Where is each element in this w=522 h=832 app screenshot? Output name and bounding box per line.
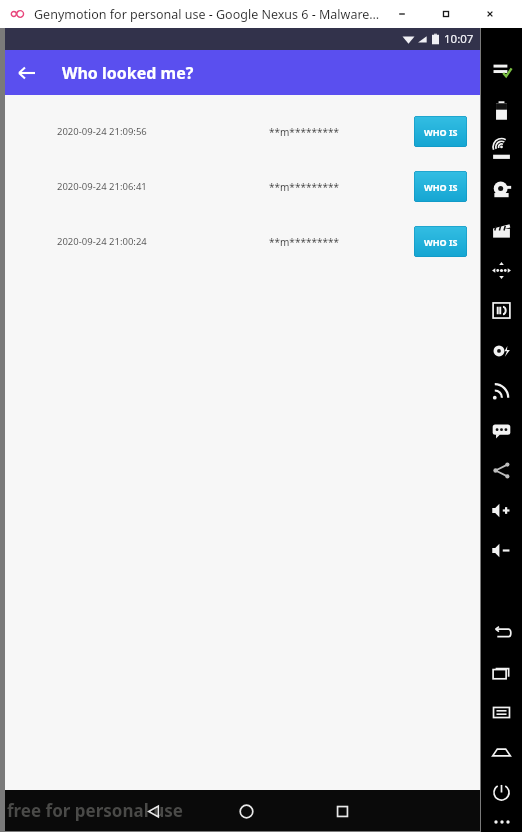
button[interactable]: Network xyxy=(481,370,522,410)
button[interactable]: 2020-09-24 21:09:56 xyxy=(5,104,480,159)
button[interactable]: Screen record xyxy=(481,210,522,250)
button[interactable]: Minimize xyxy=(380,0,424,28)
button[interactable]: Maximize xyxy=(424,0,468,28)
button[interactable]: WHO IS xyxy=(414,171,467,202)
button[interactable]: Camera xyxy=(481,170,522,210)
button[interactable]: SMS xyxy=(481,410,522,450)
button[interactable]: 2020-09-24 21:00:24 xyxy=(5,214,480,269)
staticText: 2020-09-24 21:09:56 xyxy=(57,125,147,138)
button[interactable]: Home xyxy=(227,792,265,830)
button[interactable]: GPS xyxy=(481,130,522,170)
staticText: 10:07 xyxy=(444,31,474,47)
button[interactable]: WHO IS xyxy=(414,116,467,147)
button[interactable]: Back xyxy=(5,51,49,95)
staticText: free for personal use xyxy=(7,799,183,822)
button[interactable]: Volume down xyxy=(481,530,522,570)
staticText: WHO IS xyxy=(424,236,458,248)
button[interactable]: Open GApps xyxy=(481,50,522,90)
button[interactable]: Menu xyxy=(481,692,522,732)
button[interactable]: Battery xyxy=(481,90,522,130)
button[interactable]: Close xyxy=(468,0,512,28)
button[interactable]: 2020-09-24 21:06:41 xyxy=(5,159,480,214)
button[interactable]: Back xyxy=(134,792,172,830)
button[interactable]: Recent apps xyxy=(323,792,361,830)
staticText: Genymotion for personal use - Google Nex… xyxy=(34,6,380,23)
button[interactable]: Identifiers xyxy=(481,290,522,330)
button[interactable]: Share xyxy=(481,450,522,490)
button[interactable]: More xyxy=(481,812,522,832)
staticText: 2020-09-24 21:06:41 xyxy=(57,180,147,193)
button[interactable]: Power xyxy=(481,772,522,812)
button[interactable]: Rotate xyxy=(481,250,522,290)
staticText: Who looked me? xyxy=(62,62,194,84)
button[interactable]: Home xyxy=(481,732,522,772)
staticText: **m********* xyxy=(269,235,339,249)
button[interactable]: Disk IO xyxy=(481,330,522,370)
staticText: WHO IS xyxy=(424,181,458,193)
staticText: 2020-09-24 21:00:24 xyxy=(57,235,147,248)
staticText: WHO IS xyxy=(424,126,458,138)
button[interactable]: Volume up xyxy=(481,490,522,530)
button[interactable]: Back xyxy=(481,612,522,652)
staticText: **m********* xyxy=(269,125,339,139)
button[interactable]: Recents xyxy=(481,652,522,692)
staticText: **m********* xyxy=(269,180,339,194)
button[interactable]: WHO IS xyxy=(414,226,467,257)
